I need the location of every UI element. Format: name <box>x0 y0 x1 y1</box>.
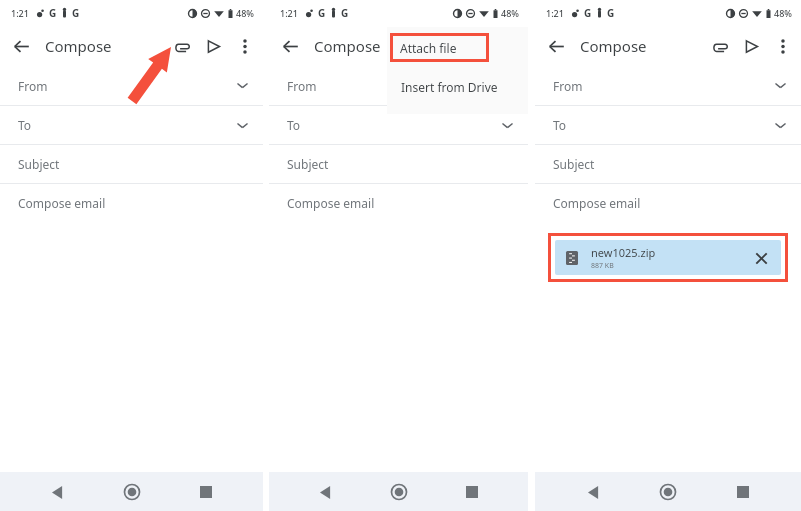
staticText: 1:21 <box>280 7 298 19</box>
staticText: G <box>584 6 592 20</box>
staticText: Attach file <box>400 40 457 56</box>
staticText: G <box>318 6 326 20</box>
button[interactable]: From <box>0 66 263 105</box>
button[interactable]: Subject <box>535 145 801 183</box>
button[interactable]: More options <box>229 31 260 62</box>
button[interactable]: Recent apps <box>189 475 223 509</box>
staticText: Compose email <box>553 195 641 211</box>
staticText: From <box>287 78 317 94</box>
staticText: Subject <box>553 156 595 172</box>
staticText: G <box>341 6 349 20</box>
button[interactable]: More options <box>767 31 798 62</box>
button[interactable]: Back <box>540 30 572 62</box>
staticText: 887 KB <box>591 261 614 271</box>
button[interactable]: Back <box>5 30 37 62</box>
staticText: Compose <box>580 36 647 56</box>
button[interactable]: Attach file <box>387 27 528 68</box>
button[interactable]: Send <box>463 31 494 62</box>
staticText: 1:21 <box>11 7 29 19</box>
button[interactable]: new1025.zip <box>555 240 781 275</box>
button[interactable]: Back <box>40 475 74 509</box>
staticText: From <box>553 78 583 94</box>
button[interactable]: Compose email <box>269 184 528 222</box>
button[interactable]: Insert from Drive <box>387 68 528 106</box>
staticText: Compose <box>314 36 381 56</box>
button[interactable]: To <box>0 106 263 144</box>
staticText: Subject <box>18 156 60 172</box>
button[interactable]: Back <box>576 475 610 509</box>
button[interactable]: To <box>535 106 801 144</box>
staticText: Subject <box>287 156 329 172</box>
button[interactable]: Recent apps <box>455 475 489 509</box>
button[interactable]: Send <box>198 31 229 62</box>
button[interactable]: Recent apps <box>726 475 760 509</box>
button[interactable]: Home <box>115 475 149 509</box>
staticText: G <box>49 6 57 20</box>
staticText: 48% <box>501 7 519 19</box>
button[interactable]: To <box>269 106 528 144</box>
staticText: G <box>607 6 615 20</box>
button[interactable]: Compose email <box>535 184 801 222</box>
staticText: To <box>287 117 301 133</box>
staticText: Compose <box>45 36 112 56</box>
button[interactable]: Subject <box>269 145 528 183</box>
staticText: Compose email <box>287 195 375 211</box>
staticText: To <box>553 117 567 133</box>
button[interactable]: Subject <box>0 145 263 183</box>
staticText: 48% <box>774 7 792 19</box>
button[interactable]: Back <box>274 30 306 62</box>
staticText: 1:21 <box>546 7 564 19</box>
staticText: G <box>72 6 80 20</box>
button[interactable]: Home <box>651 475 685 509</box>
staticText: From <box>18 78 48 94</box>
button[interactable]: Back <box>308 475 342 509</box>
staticText: Compose email <box>18 195 106 211</box>
button[interactable]: Compose email <box>0 184 263 222</box>
button[interactable]: Remove attachment <box>746 243 776 273</box>
button[interactable]: Home <box>382 475 416 509</box>
button[interactable]: Attach file <box>167 31 198 62</box>
staticText: Insert from Drive <box>401 79 498 95</box>
button[interactable]: From <box>269 66 528 105</box>
button[interactable]: Send <box>736 31 767 62</box>
button[interactable]: Attach file <box>705 31 736 62</box>
button[interactable]: Attach file <box>432 31 463 62</box>
button[interactable]: From <box>535 66 801 105</box>
staticText: 48% <box>236 7 254 19</box>
staticText: new1025.zip <box>591 245 656 260</box>
staticText: To <box>18 117 32 133</box>
